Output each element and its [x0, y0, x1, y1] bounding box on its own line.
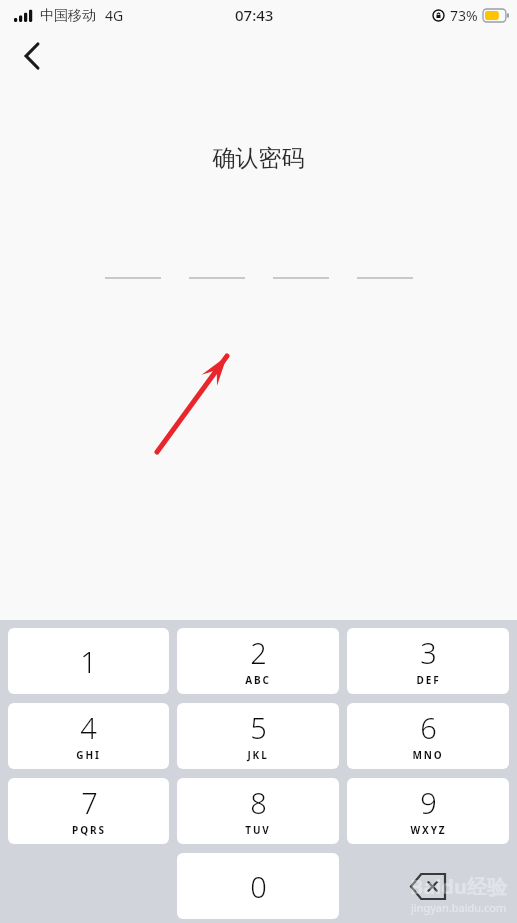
- staticText: ABC: [245, 673, 271, 687]
- button[interactable]: 7: [8, 778, 169, 844]
- staticText: JKL: [247, 748, 269, 762]
- staticText: WXYZ: [410, 823, 447, 837]
- staticText: 07:43: [235, 5, 274, 25]
- button[interactable]: Delete: [347, 853, 509, 919]
- staticText: jingyan.baidu.com: [411, 900, 507, 915]
- staticText: 4: [80, 708, 97, 747]
- staticText: MNO: [412, 748, 444, 762]
- staticText: 1: [80, 642, 97, 681]
- button[interactable]: 2: [177, 628, 339, 694]
- button[interactable]: 4: [8, 703, 169, 769]
- staticText: 9: [420, 783, 437, 822]
- button[interactable]: 0: [177, 853, 339, 919]
- staticText: 8: [250, 783, 267, 822]
- staticText: 6: [420, 708, 437, 747]
- button[interactable]: 6: [347, 703, 509, 769]
- staticText: GHI: [76, 748, 101, 762]
- button[interactable]: Back: [8, 32, 56, 80]
- staticText: 0: [250, 867, 267, 906]
- staticText: PQRS: [72, 823, 106, 837]
- staticText: DEF: [416, 673, 441, 687]
- button[interactable]: 8: [177, 778, 339, 844]
- staticText: 3: [420, 633, 437, 672]
- staticText: TUV: [245, 823, 271, 837]
- staticText: 2: [250, 633, 267, 672]
- staticText: 73%: [450, 6, 478, 25]
- staticText: 4G: [105, 6, 124, 25]
- staticText: 中国移动: [40, 7, 96, 25]
- button[interactable]: 5: [177, 703, 339, 769]
- staticText: Baidu经验: [410, 873, 507, 900]
- staticText: 5: [250, 708, 267, 747]
- button[interactable]: 3: [347, 628, 509, 694]
- staticText: 7: [81, 783, 98, 822]
- button[interactable]: 1: [8, 628, 169, 694]
- staticText: 确认密码: [0, 144, 517, 173]
- button[interactable]: 9: [347, 778, 509, 844]
